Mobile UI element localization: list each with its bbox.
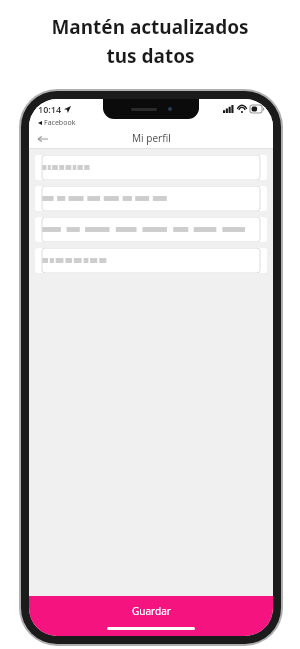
button[interactable]: Guardar xyxy=(29,596,273,636)
staticText: Mantén actualizados xyxy=(51,14,249,40)
staticText: Guardar xyxy=(132,604,171,618)
staticText: Mi perfil xyxy=(132,131,171,145)
button[interactable] xyxy=(35,217,267,242)
button[interactable] xyxy=(35,248,267,273)
button[interactable] xyxy=(35,186,267,211)
button[interactable]: Atrás xyxy=(35,131,51,147)
staticText: 10:14 xyxy=(38,103,62,115)
staticText: Facebook xyxy=(44,118,76,128)
button[interactable]: Facebook xyxy=(38,118,76,128)
staticText: tus datos xyxy=(106,43,195,69)
button[interactable] xyxy=(35,155,267,180)
